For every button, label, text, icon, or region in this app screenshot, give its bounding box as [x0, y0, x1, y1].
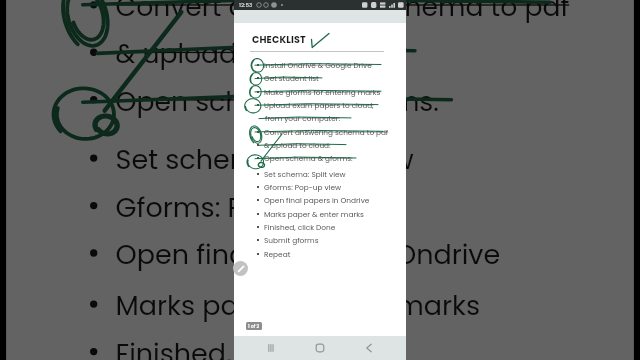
staticText: Open final papers in Ondrive	[264, 195, 370, 205]
staticText: 1 of 2	[248, 323, 260, 329]
button[interactable]: Open final papers in Ondrive	[257, 194, 370, 205]
staticText: & upload to cloud.	[264, 140, 331, 150]
staticText: Upload exam papers to cloud,	[264, 100, 374, 110]
staticText: Convert answering schema to pdf	[116, 0, 572, 23]
button[interactable]: Finished, click Done	[90, 330, 378, 360]
staticText: Open final papers in Ondrive	[116, 235, 502, 271]
button[interactable]: Gforms: Pop-up view	[257, 181, 342, 192]
staticText: Gforms: Pop-up view	[116, 187, 400, 224]
button[interactable]: Finished, click Done	[257, 221, 336, 232]
staticText: Open schema & gforms.	[116, 81, 440, 118]
staticText: Repeat	[264, 249, 291, 259]
staticText: Marks paper & enter marks	[264, 209, 364, 219]
staticText: Convert answering schema to pdf	[264, 127, 389, 137]
staticText: Marks paper & enter marks	[116, 286, 481, 322]
button[interactable]: Set schema: Split view	[257, 168, 346, 179]
button[interactable]: Back	[344, 336, 393, 360]
staticText: & upload to cloud.	[116, 34, 360, 70]
staticText: CHECKLIST	[252, 33, 306, 46]
staticText: Finished, click Done	[116, 333, 378, 360]
staticText: Submit gforms	[264, 235, 319, 245]
button[interactable]: Recents	[247, 336, 295, 360]
button[interactable]: Submit gforms	[257, 234, 319, 245]
staticText: Set schema: Split view	[116, 140, 415, 176]
staticText: Make gforms for entering marks	[264, 87, 381, 97]
staticText: Get student list	[264, 73, 319, 83]
button[interactable]: Gforms: Pop-up view	[90, 184, 400, 224]
staticText: 12:53	[239, 1, 253, 9]
staticText: Install Ondrive & Google Drive	[264, 60, 372, 70]
staticText: Gforms: Pop-up view	[264, 182, 342, 192]
staticText: Finished, click Done	[264, 222, 336, 232]
button[interactable]: Edit	[233, 261, 248, 276]
staticText: from your computer.	[265, 113, 341, 123]
staticText: Open schema & gforms.	[264, 153, 353, 163]
button[interactable]: Home	[295, 336, 344, 360]
button[interactable]: Repeat	[257, 248, 291, 259]
button[interactable]: Open final papers in Ondrive	[90, 231, 503, 271]
button[interactable]: Marks paper & enter marks	[90, 282, 481, 322]
button[interactable]: Set schema: Split view	[90, 136, 415, 176]
staticText: Set schema: Split view	[264, 169, 346, 179]
button[interactable]: Marks paper & enter marks	[257, 208, 364, 219]
